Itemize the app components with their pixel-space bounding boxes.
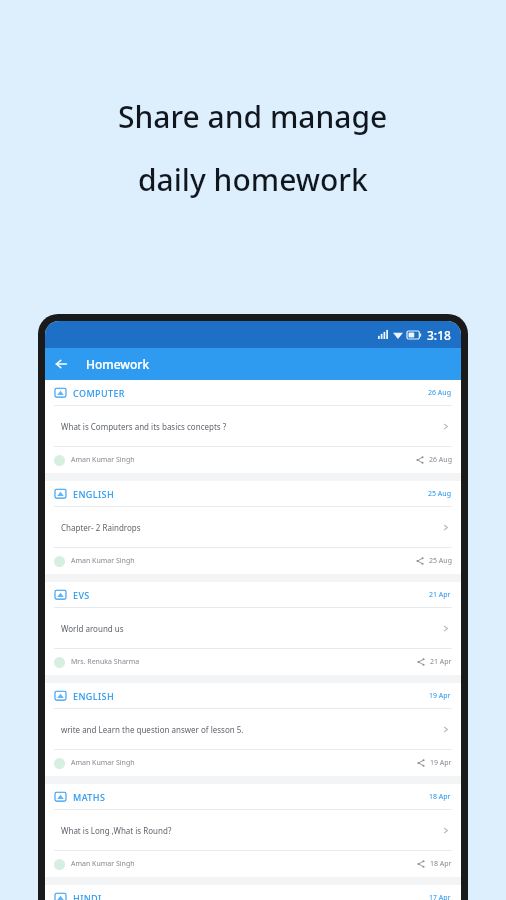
staticText: World around us [61, 623, 436, 634]
button[interactable]: ENGLISH [45, 481, 461, 574]
staticText: 25 Aug [429, 556, 452, 566]
staticText: EVS [73, 589, 90, 601]
button[interactable]: Share [414, 555, 426, 567]
staticText: 19 Apr [429, 691, 451, 701]
staticText: 25 Aug [428, 489, 451, 499]
button[interactable]: Back [45, 348, 77, 380]
staticText: Aman Kumar Singh [71, 455, 135, 465]
staticText: 18 Apr [429, 792, 451, 802]
staticText: 17 Apr [429, 893, 451, 900]
button[interactable]: EVS [45, 582, 461, 675]
staticText: COMPUTER [73, 387, 125, 399]
button[interactable]: COMPUTER [45, 380, 461, 473]
staticText: 19 Apr [430, 758, 452, 768]
staticText: Aman Kumar Singh [71, 758, 135, 768]
staticText: Chapter- 2 Raindrops [61, 522, 436, 533]
staticText: Aman Kumar Singh [71, 859, 135, 869]
staticText: 26 Aug [428, 388, 451, 398]
button[interactable]: Share [415, 858, 427, 870]
staticText: What is Long ,What is Round? [61, 825, 436, 836]
staticText: daily homework [138, 159, 368, 200]
staticText: Mrs. Renuka Sharma [71, 657, 140, 667]
staticText: write and Learn the question answer of l… [61, 724, 436, 735]
staticText: 21 Apr [430, 657, 452, 667]
staticText: Aman Kumar Singh [71, 556, 135, 566]
staticText: 3:18 [427, 327, 451, 343]
staticText: Share and manage [118, 96, 388, 137]
staticText: ENGLISH [73, 488, 115, 500]
button[interactable]: Share [414, 454, 426, 466]
staticText: HINDI [73, 892, 102, 900]
staticText: 26 Aug [429, 455, 452, 465]
button[interactable]: ENGLISH [45, 683, 461, 776]
staticText: Homework [86, 356, 150, 372]
button[interactable]: Share [415, 656, 427, 668]
button[interactable]: Share [415, 757, 427, 769]
staticText: 21 Apr [429, 590, 451, 600]
staticText: ENGLISH [73, 690, 115, 702]
staticText: What is Computers and its basics concept… [61, 421, 436, 432]
staticText: 18 Apr [430, 859, 452, 869]
button[interactable]: MATHS [45, 784, 461, 877]
button[interactable]: HINDI [45, 885, 461, 900]
staticText: MATHS [73, 791, 106, 803]
